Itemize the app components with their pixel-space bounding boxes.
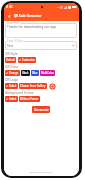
button[interactable]: Select <box>5 83 18 89</box>
button[interactable]: Select <box>5 96 18 102</box>
staticText: Blue <box>32 71 38 75</box>
button[interactable]: Text <box>5 41 77 50</box>
button[interactable]: Choose From Gallery <box>19 83 47 89</box>
staticText: Default <box>6 58 15 62</box>
staticText: QR Style <box>5 52 18 56</box>
staticText: Black <box>22 71 29 75</box>
staticText: Customize <box>22 58 35 62</box>
staticText: Thanks for downloading our app <box>7 25 56 29</box>
button[interactable]: Black <box>21 70 30 76</box>
staticText: Choose From Gallery <box>20 84 46 88</box>
staticText: QR Logo <box>5 78 18 82</box>
staticText: QR Color <box>5 65 19 69</box>
staticText: MultiColor <box>41 71 54 75</box>
button[interactable]: Generate <box>32 106 50 113</box>
staticText: Code Of Text <box>7 39 23 43</box>
staticText: Select <box>9 97 17 101</box>
button[interactable]: Blue <box>31 70 39 76</box>
staticText: Without Frame <box>20 97 39 101</box>
button[interactable]: Without Frame <box>19 96 40 102</box>
staticText: Background Frame <box>5 91 34 95</box>
button[interactable]: MultiColor <box>40 70 55 76</box>
button[interactable]: Logo preview <box>49 83 55 89</box>
staticText: Enter Text <box>7 21 20 25</box>
staticText: Generate <box>34 107 49 112</box>
staticText: QR Code Generator <box>14 14 42 18</box>
staticText: Vi 4G <box>6 5 13 9</box>
staticText: Orange <box>9 71 19 75</box>
button[interactable]: Orange <box>5 70 20 76</box>
button[interactable]: Back <box>6 13 13 20</box>
staticText: ⋯ ◱ <box>57 5 63 9</box>
button[interactable]: Thanks for downloading our app <box>5 23 77 38</box>
button[interactable]: Customize <box>18 57 36 63</box>
staticText: Text <box>7 44 14 48</box>
staticText: Select <box>9 84 17 88</box>
button[interactable]: Default <box>5 57 16 63</box>
